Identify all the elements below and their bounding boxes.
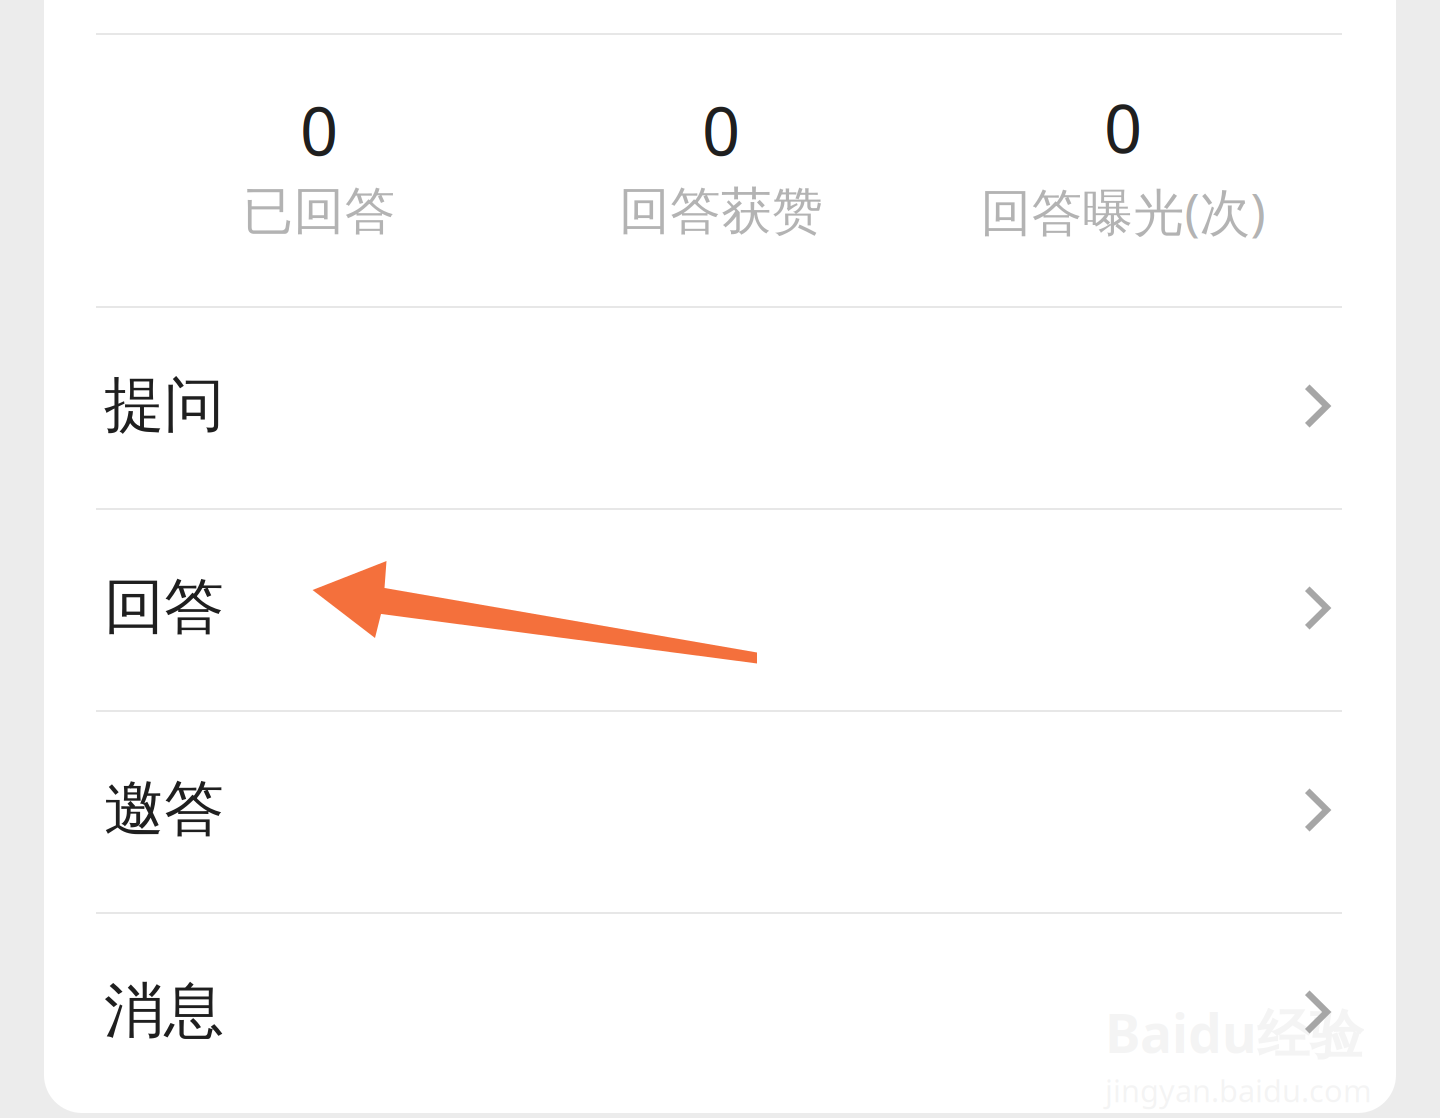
staticText: 回答: [104, 570, 224, 644]
button[interactable]: 0: [922, 84, 1324, 244]
button[interactable]: 提问: [96, 308, 1342, 508]
button[interactable]: 消息: [96, 914, 1342, 1114]
staticText: Baidu经验: [1105, 997, 1363, 1068]
button[interactable]: 0: [118, 84, 520, 244]
staticText: 回答获赞: [619, 180, 823, 242]
staticText: 已回答: [242, 180, 395, 242]
staticText: 提问: [104, 368, 224, 442]
button[interactable]: 回答: [96, 510, 1342, 710]
staticText: 0: [1104, 83, 1142, 172]
staticText: 消息: [104, 974, 224, 1048]
button[interactable]: 0: [520, 84, 922, 244]
staticText: 0: [702, 86, 740, 174]
staticText: 回答曝光(次): [980, 178, 1265, 245]
button[interactable]: 邀答: [96, 712, 1342, 912]
staticText: 0: [300, 86, 338, 174]
staticText: 邀答: [104, 772, 224, 846]
staticText: jingyan.baidu.com: [1105, 1070, 1372, 1111]
